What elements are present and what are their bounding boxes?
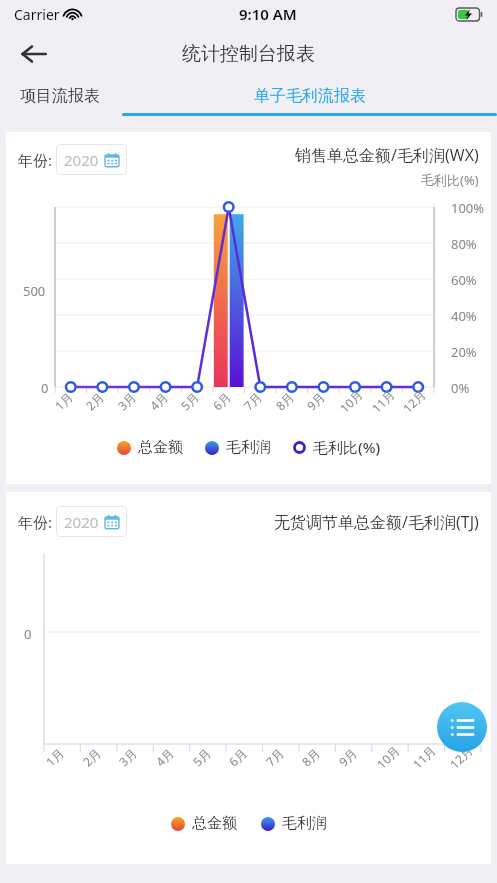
button[interactable]: 2020 bbox=[56, 506, 127, 537]
staticText: 销售单总金额/毛利润(WX) bbox=[295, 144, 479, 166]
staticText: 毛利比(%) bbox=[313, 437, 381, 457]
staticText: 9月 bbox=[335, 745, 360, 769]
staticText: 5月 bbox=[177, 389, 202, 413]
staticText: 2020 bbox=[64, 512, 99, 532]
staticText: 1月 bbox=[51, 389, 76, 413]
staticText: 0 bbox=[41, 379, 49, 397]
staticText: 2020 bbox=[64, 150, 99, 170]
staticText: 10月 bbox=[373, 742, 403, 772]
staticText: 80% bbox=[451, 235, 477, 253]
button[interactable]: 返回 bbox=[12, 32, 56, 76]
button[interactable]: 报表列表 bbox=[437, 702, 487, 752]
button[interactable]: 单子毛利流报表 bbox=[122, 80, 497, 116]
staticText: 单子毛利流报表 bbox=[254, 86, 366, 106]
staticText: 无货调节单总金额/毛利润(TJ) bbox=[274, 511, 479, 533]
staticText: 8月 bbox=[272, 389, 297, 413]
staticText: 毛利润 bbox=[282, 814, 327, 833]
staticText: 7月 bbox=[240, 389, 265, 413]
staticText: 项目流报表 bbox=[20, 86, 100, 106]
staticText: 12月 bbox=[446, 742, 476, 772]
button[interactable]: 2020 bbox=[56, 144, 127, 175]
staticText: 毛利润 bbox=[226, 438, 271, 457]
staticText: 4月 bbox=[146, 389, 171, 413]
staticText: 9:10 AM bbox=[239, 4, 297, 24]
staticText: 11月 bbox=[409, 742, 439, 772]
staticText: 总金额 bbox=[192, 814, 237, 833]
staticText: 4月 bbox=[152, 745, 177, 769]
staticText: 0 bbox=[24, 625, 32, 643]
button[interactable]: 总金额 bbox=[171, 814, 237, 833]
staticText: 6月 bbox=[225, 745, 250, 769]
staticText: 统计控制台报表 bbox=[182, 42, 315, 66]
staticText: 7月 bbox=[262, 745, 287, 769]
staticText: 5月 bbox=[189, 745, 214, 769]
staticText: 60% bbox=[451, 271, 477, 289]
staticText: 3月 bbox=[114, 389, 139, 413]
staticText: 12月 bbox=[399, 386, 429, 416]
staticText: 20% bbox=[451, 343, 477, 361]
staticText: 100% bbox=[451, 199, 485, 217]
button[interactable]: 毛利比(%) bbox=[293, 437, 381, 457]
staticText: 40% bbox=[451, 307, 477, 325]
staticText: 总金额 bbox=[138, 438, 183, 457]
staticText: 2月 bbox=[79, 745, 104, 769]
staticText: 11月 bbox=[368, 386, 398, 416]
staticText: 2月 bbox=[82, 389, 107, 413]
staticText: 毛利比(%) bbox=[421, 171, 479, 189]
button[interactable]: 项目流报表 bbox=[20, 80, 100, 113]
staticText: 3月 bbox=[115, 745, 140, 769]
staticText: 年份: bbox=[18, 150, 53, 170]
staticText: 9月 bbox=[303, 389, 328, 413]
staticText: 年份: bbox=[18, 512, 53, 532]
staticText: 8月 bbox=[298, 745, 323, 769]
staticText: 1月 bbox=[42, 745, 67, 769]
button[interactable]: 毛利润 bbox=[205, 438, 271, 457]
button[interactable]: 总金额 bbox=[117, 438, 183, 457]
staticText: 0% bbox=[451, 379, 470, 397]
staticText: Carrier bbox=[14, 5, 60, 24]
staticText: 10月 bbox=[336, 386, 366, 416]
button[interactable]: 毛利润 bbox=[261, 814, 327, 833]
staticText: 500 bbox=[23, 282, 46, 300]
staticText: 6月 bbox=[209, 389, 234, 413]
